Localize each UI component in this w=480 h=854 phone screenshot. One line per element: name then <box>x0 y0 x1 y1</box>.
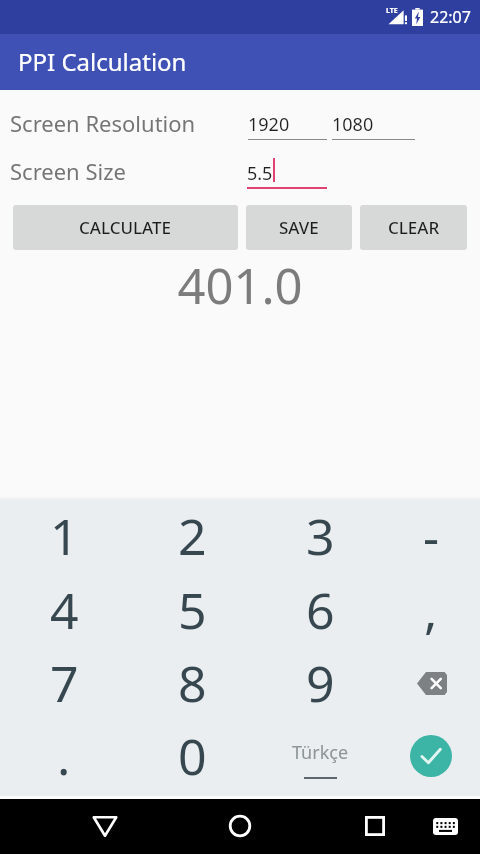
button[interactable]: , <box>375 573 480 646</box>
staticText: , <box>424 576 438 644</box>
staticText: CLEAR <box>388 216 440 239</box>
button[interactable]: 4 <box>8 573 120 646</box>
staticText: 0 <box>178 722 207 790</box>
staticText: 1 <box>50 502 79 570</box>
staticText: 5 <box>178 576 207 644</box>
button[interactable]: CALCULATE <box>13 205 238 250</box>
staticText: 2 <box>178 502 207 570</box>
staticText: 6 <box>306 576 335 644</box>
staticText: Türkçe <box>292 740 349 765</box>
staticText: . <box>57 722 71 790</box>
staticText: 1920 <box>248 112 290 137</box>
button[interactable]: 9 <box>264 646 376 719</box>
button[interactable]: CLEAR <box>360 205 467 250</box>
staticText: Screen Resolution <box>10 108 196 138</box>
staticText: PPI Calculation <box>18 45 187 78</box>
button[interactable]: 5.5 <box>247 161 327 189</box>
staticText: 9 <box>306 649 335 717</box>
button[interactable]: 2 <box>136 499 248 572</box>
button[interactable]: Keyboard <box>425 806 465 846</box>
button[interactable]: Done <box>375 719 480 792</box>
staticText: CALCULATE <box>79 216 172 239</box>
staticText: 5.5 <box>247 161 273 186</box>
button[interactable]: 1 <box>8 499 120 572</box>
button[interactable]: Türkçe <box>264 723 376 796</box>
button[interactable]: 6 <box>264 573 376 646</box>
button[interactable]: 5 <box>136 573 248 646</box>
button[interactable]: Recents <box>351 802 399 850</box>
button[interactable]: 1080 <box>332 112 415 140</box>
staticText: 22:07 <box>430 6 471 28</box>
button[interactable]: 7 <box>8 646 120 719</box>
button[interactable]: 8 <box>136 646 248 719</box>
staticText: Screen Size <box>10 156 126 186</box>
button[interactable]: Back <box>81 802 129 850</box>
staticText: LTE <box>386 6 398 16</box>
staticText: - <box>423 502 440 570</box>
button[interactable]: PPI Calculation <box>0 34 480 90</box>
staticText: 401.0 <box>0 252 480 319</box>
button[interactable]: . <box>8 719 120 792</box>
staticText: 8 <box>178 649 207 717</box>
button[interactable]: - <box>375 499 480 572</box>
staticText: 7 <box>50 649 79 717</box>
button[interactable]: 3 <box>264 499 376 572</box>
button[interactable]: 0 <box>136 719 248 792</box>
button[interactable]: Home <box>216 802 264 850</box>
button[interactable]: 1920 <box>248 112 327 140</box>
staticText: 3 <box>306 502 335 570</box>
staticText: SAVE <box>279 216 319 239</box>
button[interactable]: Delete <box>376 647 480 720</box>
button[interactable]: SAVE <box>246 205 352 250</box>
staticText: 4 <box>50 576 79 644</box>
staticText: 1080 <box>332 112 374 137</box>
